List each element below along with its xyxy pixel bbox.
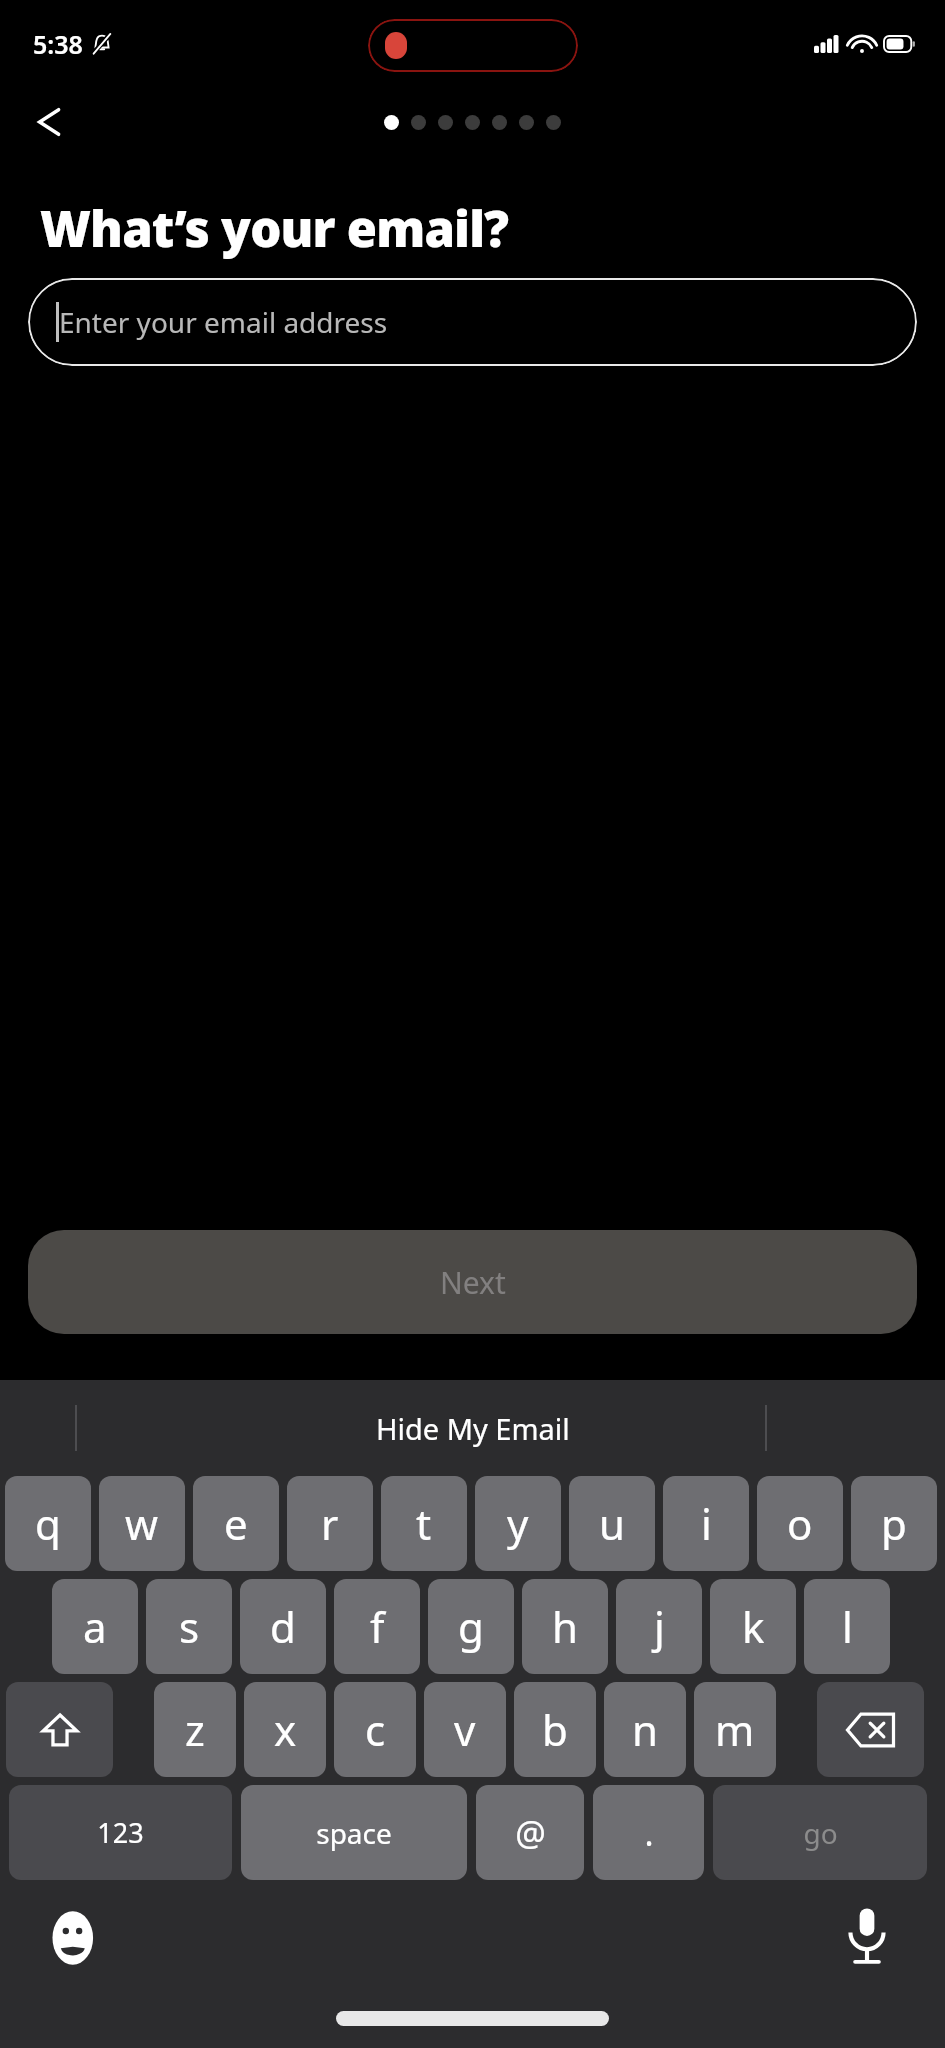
button[interactable]: Back [20, 94, 76, 150]
button[interactable]: 123 [9, 1785, 232, 1880]
button[interactable]: m [694, 1682, 776, 1777]
button[interactable]: b [514, 1682, 596, 1777]
button[interactable]: @ [476, 1785, 584, 1880]
button[interactable]: h [522, 1579, 608, 1674]
button[interactable]: j [616, 1579, 702, 1674]
button[interactable]: u [569, 1476, 655, 1571]
button[interactable]: k [710, 1579, 796, 1674]
staticText: p [881, 1495, 907, 1552]
button[interactable]: l [804, 1579, 890, 1674]
button[interactable]: space [241, 1785, 467, 1880]
button[interactable]: s [146, 1579, 232, 1674]
staticText: y [507, 1495, 529, 1552]
staticText: go [803, 1814, 838, 1852]
staticText: q [35, 1495, 61, 1552]
staticText: t [416, 1495, 432, 1552]
staticText: c [365, 1701, 386, 1758]
button[interactable]: z [154, 1682, 236, 1777]
staticText: Enter your email address [59, 303, 388, 341]
staticText: k [742, 1598, 765, 1655]
staticText: Next [440, 1262, 506, 1303]
button[interactable]: o [757, 1476, 843, 1571]
button[interactable]: Shift [6, 1682, 113, 1777]
staticText: 123 [97, 1814, 144, 1851]
button[interactable]: Enter your email address [28, 278, 917, 366]
staticText: o [787, 1495, 813, 1552]
button[interactable]: p [851, 1476, 937, 1571]
button[interactable]: w [99, 1476, 185, 1571]
staticText: . [644, 1810, 654, 1856]
button[interactable]: q [5, 1476, 91, 1571]
staticText: d [270, 1598, 296, 1655]
staticText: x [274, 1701, 297, 1758]
staticText: 5:38 [33, 27, 83, 61]
button[interactable]: d [240, 1579, 326, 1674]
staticText: z [185, 1701, 205, 1758]
staticText: u [599, 1495, 625, 1552]
staticText: w [125, 1495, 159, 1552]
staticText: space [316, 1814, 392, 1852]
staticText: a [83, 1598, 107, 1655]
button[interactable]: n [604, 1682, 686, 1777]
button[interactable]: f [334, 1579, 420, 1674]
button[interactable]: Next [28, 1230, 917, 1334]
staticText: v [454, 1701, 476, 1758]
staticText: i [701, 1495, 712, 1552]
button[interactable]: e [193, 1476, 279, 1571]
staticText: h [552, 1598, 578, 1655]
button[interactable]: r [287, 1476, 373, 1571]
button[interactable]: v [424, 1682, 506, 1777]
staticText: n [632, 1701, 658, 1758]
button[interactable]: t [381, 1476, 467, 1571]
button[interactable]: . [593, 1785, 704, 1880]
button[interactable]: x [244, 1682, 326, 1777]
button[interactable]: Emoji [48, 1908, 108, 1968]
staticText: b [542, 1701, 568, 1758]
staticText: m [715, 1701, 755, 1758]
button[interactable]: a [52, 1579, 138, 1674]
button[interactable]: Backspace [817, 1682, 924, 1777]
staticText: l [842, 1598, 853, 1655]
staticText: @ [515, 1810, 546, 1856]
staticText: e [224, 1495, 248, 1552]
button[interactable]: Dictate [837, 1906, 897, 1966]
button[interactable]: c [334, 1682, 416, 1777]
button[interactable]: Hide My Email [376, 1409, 570, 1448]
button[interactable]: y [475, 1476, 561, 1571]
button[interactable]: i [663, 1476, 749, 1571]
staticText: r [321, 1495, 339, 1552]
button[interactable]: go [713, 1785, 927, 1880]
staticText: g [458, 1598, 484, 1655]
button[interactable]: g [428, 1579, 514, 1674]
staticText: Hide My Email [376, 1409, 570, 1448]
staticText: What’s your email? [40, 195, 509, 262]
staticText: j [654, 1598, 665, 1655]
staticText: s [179, 1598, 200, 1655]
staticText: f [370, 1598, 385, 1655]
